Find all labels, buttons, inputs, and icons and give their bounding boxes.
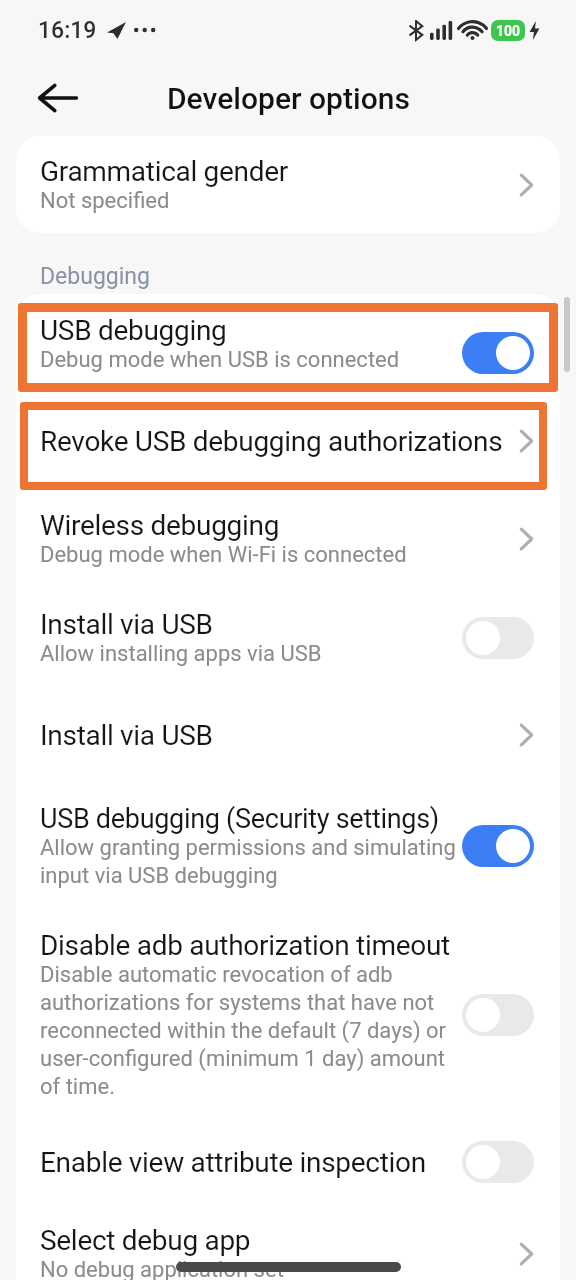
staticText: USB debugging (Security settings) (40, 803, 439, 835)
button[interactable]: Install via USB (16, 687, 560, 783)
button[interactable]: Select debug app (16, 1204, 560, 1280)
staticText: Disable automatic revocation of adb auth… (40, 962, 447, 1100)
button[interactable]: USB debugging (Security settings) (16, 783, 560, 909)
button[interactable]: Install via USB (16, 588, 560, 687)
staticText: Install via USB (40, 719, 213, 752)
button[interactable] (462, 1141, 534, 1183)
staticText: Enable view attribute inspection (40, 1146, 426, 1179)
button[interactable] (462, 825, 534, 867)
button[interactable] (462, 994, 534, 1036)
button[interactable] (462, 332, 534, 374)
staticText: 16:19 (38, 17, 97, 44)
staticText: USB debugging (40, 314, 227, 347)
staticText: Allow installing apps via USB (40, 641, 322, 667)
staticText: Revoke USB debugging authorizations (40, 425, 503, 458)
staticText: Debugging (40, 263, 150, 290)
staticText: Debug mode when USB is connected (40, 347, 400, 373)
staticText: Not specified (40, 188, 170, 214)
button[interactable] (38, 83, 78, 113)
button[interactable]: Grammatical gender (16, 136, 560, 233)
staticText: Select debug app (40, 1224, 251, 1257)
staticText: Allow granting permissions and simulatin… (40, 835, 456, 889)
button[interactable] (462, 617, 534, 659)
button[interactable]: Wireless debugging (16, 489, 560, 588)
staticText: No debug application set (40, 1257, 284, 1280)
staticText: Disable adb authorization timeout (40, 929, 450, 962)
staticText: Debug mode when Wi-Fi is connected (40, 542, 407, 568)
button[interactable]: Disable adb authorization timeout (16, 909, 560, 1120)
staticText: Grammatical gender (40, 155, 288, 188)
staticText: Install via USB (40, 608, 213, 641)
button[interactable]: Enable view attribute inspection (16, 1120, 560, 1204)
staticText: Developer options (167, 81, 410, 116)
button[interactable]: USB debugging (16, 294, 560, 393)
button[interactable]: Revoke USB debugging authorizations (16, 393, 560, 489)
staticText: Wireless debugging (40, 509, 280, 542)
staticText: 100 (496, 23, 521, 39)
